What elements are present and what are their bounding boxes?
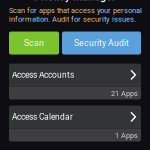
button[interactable]: Security Audit [62, 31, 141, 54]
staticText: 1 Apps [115, 131, 138, 140]
staticText: Scan [24, 38, 44, 48]
button[interactable]: Access Accounts [9, 63, 141, 99]
button[interactable]: Access Calendar [9, 105, 141, 141]
staticText: Access Calendar [12, 112, 73, 122]
staticText: Privacy Manager [34, 0, 116, 3]
staticText: Scan for apps that access your personal … [9, 6, 142, 23]
button[interactable]: Scan [9, 31, 59, 54]
staticText: Access Accounts [12, 70, 74, 80]
staticText: Security Audit [74, 38, 129, 48]
staticText: 21 Apps [111, 89, 138, 98]
